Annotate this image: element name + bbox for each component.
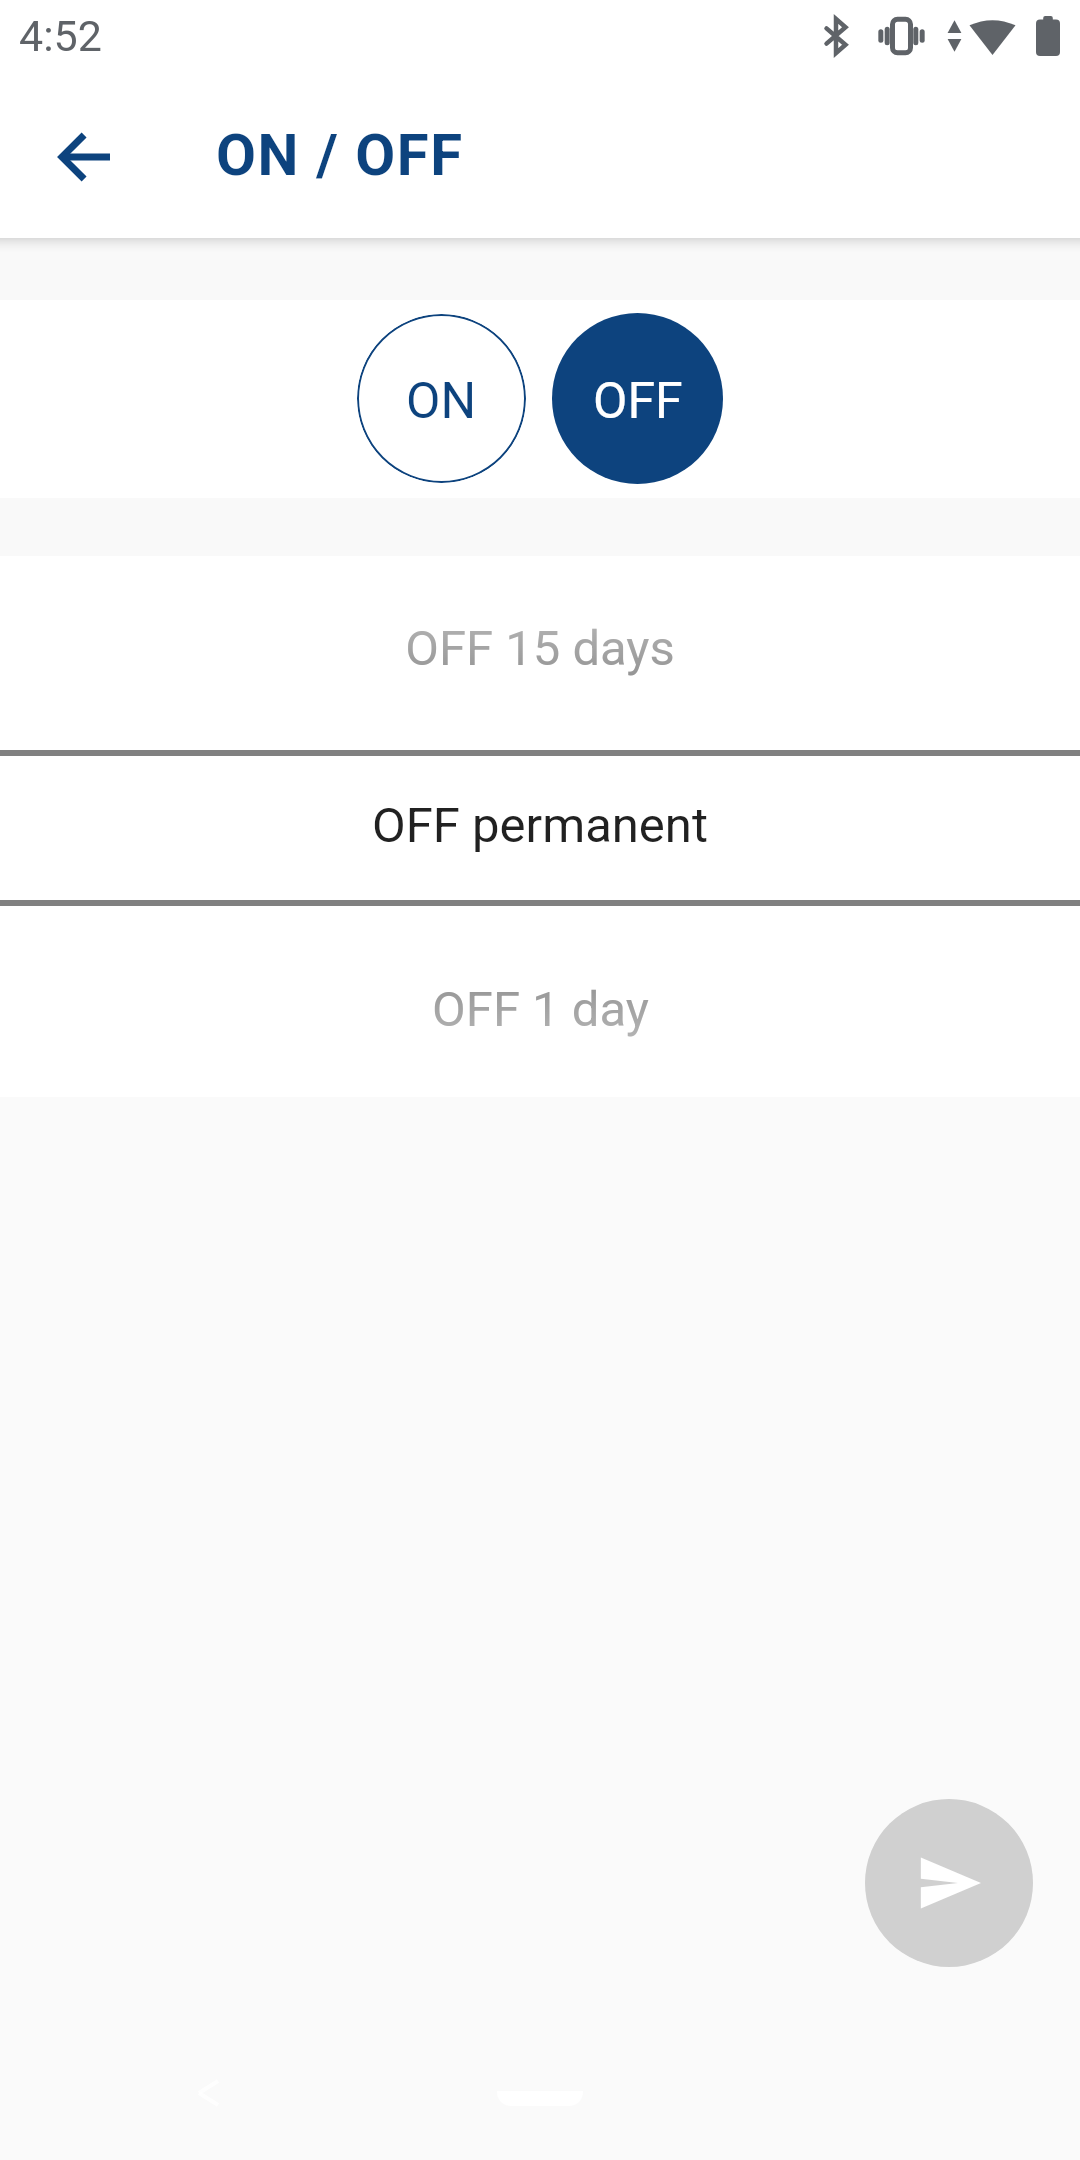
staticText: OFF permanent (372, 797, 708, 854)
staticText: ON (406, 372, 477, 431)
staticText: OFF 1 day (432, 981, 649, 1038)
staticText: OFF 15 days (405, 620, 675, 677)
staticText: 4:52 (19, 11, 102, 61)
button[interactable] (0, 750, 1080, 900)
staticText: OFF (593, 372, 683, 431)
button[interactable]: ON (357, 314, 526, 483)
button[interactable] (0, 900, 1080, 1097)
staticText: ON / OFF (216, 121, 464, 189)
button[interactable] (0, 556, 1080, 750)
button[interactable]: OFF (552, 313, 723, 484)
button[interactable]: Back (38, 109, 134, 205)
button[interactable]: Send (865, 1799, 1033, 1967)
